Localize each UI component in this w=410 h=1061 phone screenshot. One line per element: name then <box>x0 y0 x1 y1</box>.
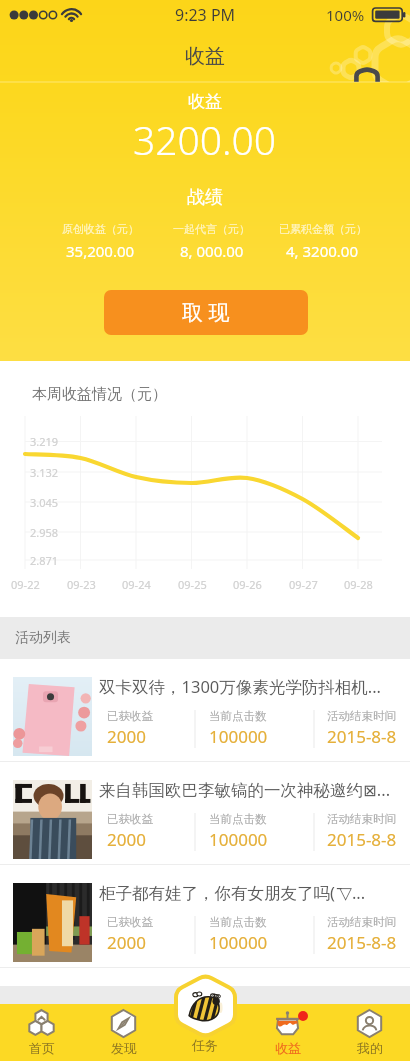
staticText: 09-25 <box>178 577 207 592</box>
button[interactable]: 双卡双待，1300万像素光学防抖相机... <box>0 659 410 762</box>
staticText: 已累积金额（元） <box>279 222 367 236</box>
staticText: 09-26 <box>233 577 262 592</box>
staticText: 3.219 <box>30 434 59 449</box>
staticText: 2.871 <box>30 553 59 568</box>
staticText: 2.958 <box>30 525 59 540</box>
staticText: 2015-8-8 <box>327 931 397 954</box>
staticText: 当前点击数 <box>209 812 267 826</box>
staticText: 3200.00 <box>133 113 277 166</box>
staticText: 已获收益 <box>107 915 153 929</box>
staticText: 活动结束时间 <box>327 915 396 929</box>
staticText: 2000 <box>107 725 146 748</box>
staticText: 100% <box>326 5 365 25</box>
staticText: 战绩 <box>187 186 223 209</box>
staticText: 2000 <box>107 828 146 851</box>
staticText: 双卡双待，1300万像素光学防抖相机... <box>99 675 382 698</box>
button[interactable]: 任务 <box>174 973 237 1039</box>
button[interactable]: 首页 <box>0 1004 82 1061</box>
staticText: 4, 3200.00 <box>286 241 359 261</box>
staticText: 当前点击数 <box>209 915 267 929</box>
staticText: 活动结束时间 <box>327 709 396 723</box>
staticText: 收益 <box>188 91 222 112</box>
staticText: 我的 <box>357 1040 383 1056</box>
staticText: 发现 <box>111 1040 137 1056</box>
staticText: 100000 <box>209 931 268 954</box>
staticText: 收益 <box>185 44 225 69</box>
button[interactable]: 我的 <box>328 1004 410 1061</box>
staticText: 收益 <box>275 1040 301 1056</box>
button[interactable]: 收益 <box>246 1004 328 1061</box>
staticText: 柜子都有娃了，你有女朋友了吗( ̄▽... <box>99 881 366 904</box>
staticText: 一起代言（元） <box>173 222 250 236</box>
staticText: 当前点击数 <box>209 709 267 723</box>
staticText: 本周收益情况（元） <box>32 385 167 404</box>
button[interactable]: 来自韩国欧巴李敏镐的一次神秘邀约⊠... <box>0 762 410 865</box>
staticText: 来自韩国欧巴李敏镐的一次神秘邀约⊠... <box>99 778 391 801</box>
staticText: 100000 <box>209 828 268 851</box>
staticText: 3.132 <box>30 465 59 480</box>
staticText: 2015-8-8 <box>327 725 397 748</box>
staticText: 已获收益 <box>107 709 153 723</box>
staticText: 09-28 <box>344 577 373 592</box>
staticText: 09-24 <box>122 577 151 592</box>
staticText: 取 现 <box>182 298 230 327</box>
staticText: 3.045 <box>30 495 59 510</box>
staticText: 09-22 <box>11 577 40 592</box>
staticText: 原创收益（元） <box>62 222 139 236</box>
staticText: 8, 000.00 <box>180 241 244 261</box>
staticText: 2015-8-8 <box>327 828 397 851</box>
staticText: 35,200.00 <box>66 241 135 261</box>
staticText: 已获收益 <box>107 812 153 826</box>
staticText: 100000 <box>209 725 268 748</box>
button[interactable]: 柜子都有娃了，你有女朋友了吗( ̄▽... <box>0 865 410 968</box>
staticText: 09-23 <box>67 577 96 592</box>
staticText: 09-27 <box>289 577 318 592</box>
staticText: 活动列表 <box>15 629 71 647</box>
button[interactable]: 发现 <box>82 1004 164 1061</box>
staticText: 9:23 PM <box>175 4 236 26</box>
button[interactable]: 取 现 <box>104 290 308 335</box>
button[interactable]: 任务 <box>164 1004 246 1061</box>
staticText: 任务 <box>192 1037 218 1053</box>
staticText: 首页 <box>29 1040 55 1056</box>
staticText: 2000 <box>107 931 146 954</box>
staticText: 活动结束时间 <box>327 812 396 826</box>
